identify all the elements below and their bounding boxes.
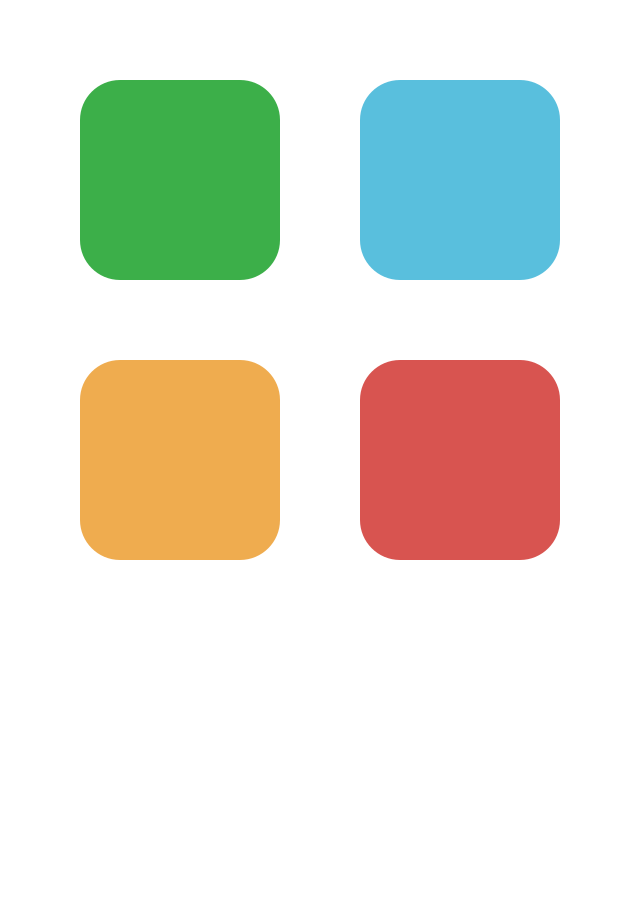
button[interactable]: Orange [80, 360, 280, 560]
button[interactable]: Blue [360, 80, 560, 280]
button[interactable]: Green [80, 80, 280, 280]
button[interactable]: Red [360, 360, 560, 560]
